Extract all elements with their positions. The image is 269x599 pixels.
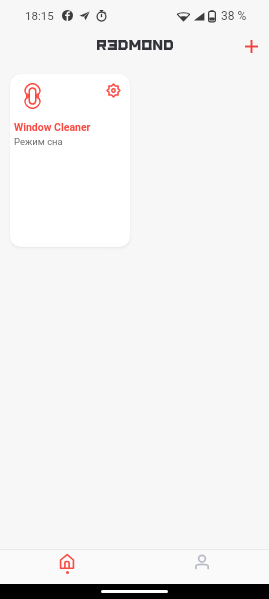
button[interactable]: Add device <box>238 32 264 58</box>
button[interactable]: Settings <box>102 78 124 100</box>
staticText: 18:15 <box>25 9 54 22</box>
button[interactable]: Home <box>0 550 134 584</box>
staticText: Режим сна <box>14 136 63 147</box>
staticText: Window Cleaner <box>14 121 91 133</box>
button[interactable]: Settings <box>10 74 130 247</box>
staticText: 38 % <box>221 9 247 23</box>
button[interactable]: Profile <box>134 550 269 584</box>
